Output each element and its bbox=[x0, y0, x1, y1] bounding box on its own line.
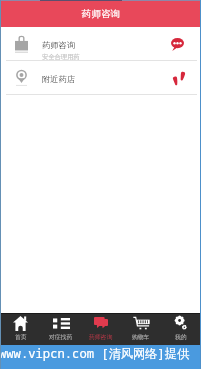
staticText: 药师咨询 bbox=[82, 8, 120, 20]
button[interactable]: 附近药店 bbox=[0, 61, 201, 94]
staticText: 购物车 bbox=[132, 333, 150, 340]
button[interactable]: 购物车 bbox=[121, 314, 161, 345]
button[interactable]: 首页 bbox=[0, 314, 41, 345]
button[interactable]: 我的 bbox=[161, 314, 201, 345]
staticText: 首页 bbox=[15, 333, 27, 340]
button[interactable]: 对症找药 bbox=[41, 314, 81, 345]
button[interactable]: 药师咨询 bbox=[81, 314, 121, 345]
staticText: 我的 bbox=[175, 333, 187, 340]
staticText: 安全合理用药 bbox=[42, 53, 80, 61]
other: 咨询 bbox=[156, 27, 201, 60]
staticText: www.vipcn.com [清风网络]提供 bbox=[0, 345, 190, 362]
other: 附近药店 bbox=[156, 61, 201, 94]
staticText: 药师咨询 bbox=[42, 40, 76, 50]
button[interactable]: 药师咨询 bbox=[0, 27, 201, 60]
staticText: 药师咨询 bbox=[89, 333, 113, 340]
staticText: 附近药店 bbox=[42, 74, 76, 84]
staticText: 对症找药 bbox=[49, 333, 73, 340]
